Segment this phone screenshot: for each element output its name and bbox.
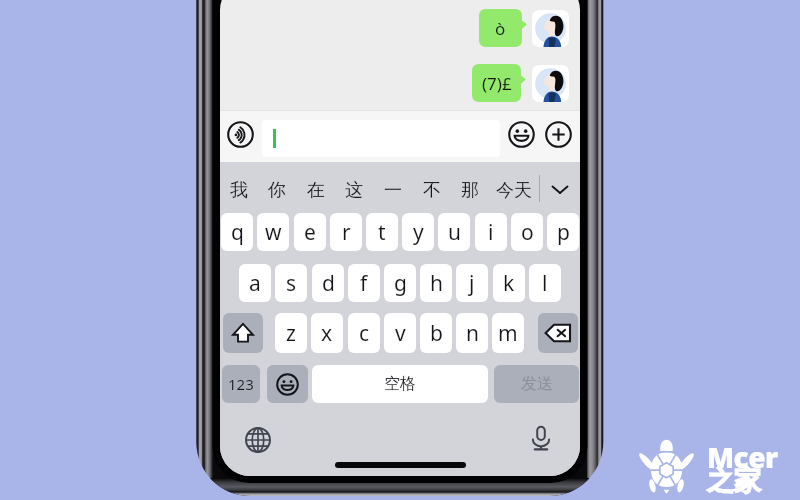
button[interactable]: 我 [220,171,258,209]
button[interactable]: 空格 [312,365,488,403]
button[interactable]: o [511,213,543,251]
staticText: k [503,269,515,298]
button[interactable]: 在 [297,171,335,209]
staticText: ò [495,17,506,40]
staticText: b [430,319,443,348]
staticText: 我 [230,179,248,202]
staticText: (7)£ [482,72,512,95]
staticText: x [321,319,333,348]
button[interactable]: h [420,264,452,302]
button[interactable]: q [221,213,253,251]
button[interactable]: 今天 [492,171,536,209]
button[interactable]: More options [545,121,572,148]
button[interactable]: Contact avatar [532,65,569,102]
button[interactable] [262,120,500,157]
button[interactable]: k [493,264,525,302]
staticText: o [521,218,534,247]
staticText: a [249,269,261,298]
button[interactable]: t [366,213,398,251]
staticText: f [360,269,368,298]
button[interactable]: w [257,213,289,251]
button[interactable]: 你 [258,171,296,209]
staticText: i [488,218,494,247]
button[interactable]: g [384,264,416,302]
button[interactable]: Voice dictation [527,424,555,452]
staticText: 那 [461,179,479,202]
button[interactable]: Emoji [508,121,535,148]
staticText: Mcer [707,438,778,476]
staticText: 之家 [707,464,761,498]
button[interactable]: ò [479,9,527,47]
button[interactable]: 发送 [494,365,579,403]
button[interactable]: m [492,313,524,353]
button[interactable]: Emoji keyboard [267,365,308,403]
staticText: l [542,269,548,298]
button[interactable]: 一 [374,171,412,209]
staticText: d [322,269,335,298]
staticText: t [378,218,386,247]
staticText: 今天 [496,179,532,202]
button[interactable]: i [475,213,507,251]
staticText: s [286,269,297,298]
button[interactable]: 这 [335,171,373,209]
button[interactable]: Backspace [538,313,578,353]
button[interactable]: 那 [451,171,489,209]
button[interactable]: Change language [245,427,271,453]
staticText: r [342,218,351,247]
button[interactable]: Voice input [227,121,254,148]
staticText: u [448,218,461,247]
staticText: c [359,319,370,348]
button[interactable]: 123 [222,365,260,403]
staticText: 在 [307,179,325,202]
button[interactable]: d [312,264,344,302]
staticText: 发送 [521,374,553,394]
button[interactable]: r [330,213,362,251]
button[interactable]: Hide keyboard [545,174,575,204]
button[interactable]: v [384,313,416,353]
button[interactable]: z [275,313,307,353]
staticText: p [557,218,570,247]
staticText: 不 [423,179,441,202]
staticText: e [304,218,316,247]
staticText: m [498,319,518,348]
staticText: 一 [384,179,402,202]
staticText: q [231,218,244,247]
staticText: j [469,269,475,298]
button[interactable]: (7)£ [472,64,526,102]
button[interactable]: b [420,313,452,353]
button[interactable]: j [456,264,488,302]
button[interactable]: a [239,264,271,302]
button[interactable]: l [529,264,561,302]
staticText: 你 [268,179,286,202]
staticText: 123 [228,374,254,394]
staticText: v [395,319,406,348]
staticText: y [413,218,424,247]
button[interactable]: n [456,313,488,353]
button[interactable]: Contact avatar [532,10,569,47]
staticText: h [430,269,443,298]
button[interactable]: c [348,313,380,353]
staticText: n [466,319,479,348]
staticText: z [286,319,296,348]
button[interactable]: 不 [413,171,451,209]
staticText: g [394,269,407,298]
button[interactable]: p [547,213,579,251]
button[interactable]: s [275,264,307,302]
button[interactable]: x [311,313,343,353]
staticText: 这 [345,179,363,202]
staticText: 空格 [384,374,416,394]
button[interactable]: Shift [223,313,263,353]
button[interactable]: e [294,213,326,251]
button[interactable]: y [402,213,434,251]
button[interactable]: u [438,213,470,251]
button[interactable]: f [348,264,380,302]
staticText: w [265,218,282,247]
